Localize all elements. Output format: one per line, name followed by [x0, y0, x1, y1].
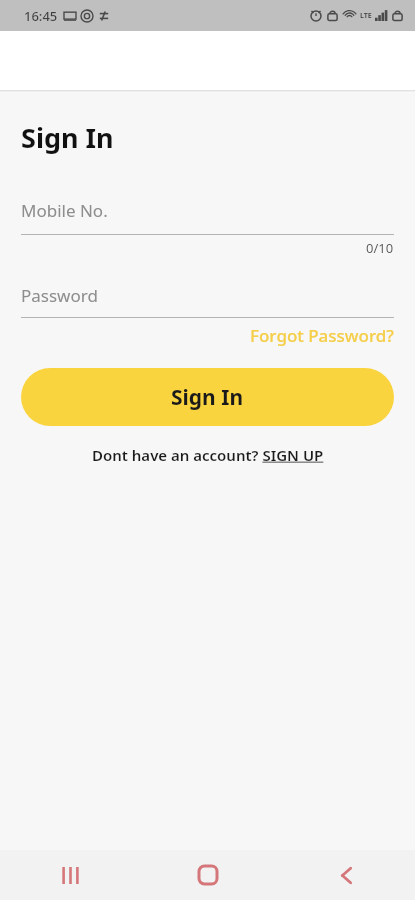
staticText: Dont have an account? SIGN UP	[92, 445, 324, 465]
button[interactable]: Mobile No.	[21, 187, 394, 234]
staticText: Sign In	[171, 383, 244, 412]
staticText: 0/10	[366, 239, 394, 257]
button[interactable]: Password	[21, 273, 394, 317]
staticText: Sign In	[21, 119, 114, 156]
staticText: Mobile No.	[21, 199, 108, 222]
button[interactable]: Back	[277, 850, 415, 900]
button[interactable]: Sign In	[21, 368, 394, 426]
button[interactable]: Recent apps	[0, 850, 139, 900]
staticText: 16:45	[24, 7, 58, 25]
button[interactable]: Home	[139, 850, 277, 900]
staticText: LTE	[360, 11, 372, 21]
staticText: Forgot Password?	[250, 324, 394, 347]
staticText: Password	[21, 284, 98, 307]
button[interactable]: Dont have an account? SIGN UP	[92, 445, 324, 465]
button[interactable]: Forgot Password?	[250, 324, 394, 347]
